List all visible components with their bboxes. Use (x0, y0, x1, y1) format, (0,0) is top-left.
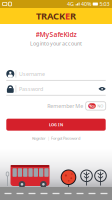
staticText: 4G (67, 0, 74, 8)
staticText: Password (19, 85, 43, 92)
staticText: | (47, 136, 49, 141)
staticText: LOG IN (49, 122, 63, 127)
staticText: E (65, 10, 70, 22)
staticText: R (70, 10, 76, 22)
staticText: Yes (89, 103, 95, 109)
button[interactable]: Remember Me toggle (86, 102, 106, 110)
staticText: Log into your account (30, 40, 82, 47)
button[interactable]: Forgot Password (51, 136, 80, 141)
button[interactable]: Register (32, 136, 46, 141)
staticText: Username (19, 70, 45, 77)
staticText: Remember Me (47, 102, 83, 109)
staticText: Register (32, 136, 46, 141)
staticText: 40% (81, 0, 91, 8)
staticText: #MySafeKidz (35, 30, 76, 39)
staticText: 5:03 (99, 0, 109, 8)
staticText: TRACK (36, 10, 65, 22)
staticText: NO (97, 103, 103, 109)
button[interactable]: LOG IN (6, 119, 106, 131)
staticText: Forgot Password (51, 136, 80, 141)
